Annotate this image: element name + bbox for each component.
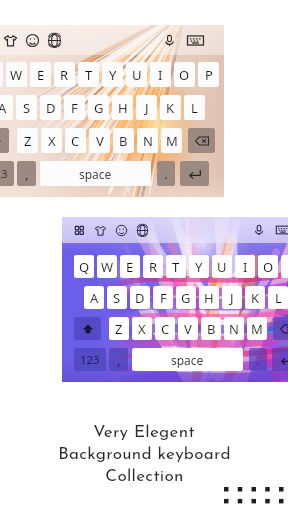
button[interactable]: Voice input xyxy=(252,223,266,237)
button[interactable]: Emoji xyxy=(25,33,40,48)
button[interactable]: Theme xyxy=(94,224,107,237)
button[interactable]: L xyxy=(268,286,288,309)
button[interactable]: Enter xyxy=(272,348,288,371)
staticText: C xyxy=(71,132,80,150)
button[interactable]: Keyboard xyxy=(275,222,288,238)
button[interactable]: A xyxy=(0,95,13,120)
button[interactable]: T xyxy=(78,62,99,87)
button[interactable]: Z xyxy=(17,128,38,153)
button[interactable]: Q xyxy=(0,62,3,87)
button[interactable]: B xyxy=(113,128,134,153)
button[interactable]: Shift xyxy=(0,128,9,153)
button[interactable]: L xyxy=(184,95,205,120)
button[interactable]: J xyxy=(222,286,242,309)
button[interactable]: K xyxy=(245,286,265,309)
button[interactable]: space xyxy=(40,161,151,186)
button[interactable]: Backspace xyxy=(273,317,288,340)
button[interactable]: U xyxy=(212,255,232,278)
staticText: G xyxy=(94,99,104,117)
button[interactable]: N xyxy=(137,128,158,153)
staticText: G xyxy=(181,289,191,307)
button[interactable]: Keyboard xyxy=(186,31,205,50)
button[interactable]: R xyxy=(143,255,163,278)
button[interactable]: Theme xyxy=(3,33,18,48)
button[interactable]: F xyxy=(64,95,85,120)
button[interactable]: C xyxy=(65,128,86,153)
staticText: M xyxy=(166,132,178,150)
staticText: J xyxy=(230,289,234,307)
staticText: , xyxy=(25,165,29,183)
button[interactable]: P xyxy=(281,255,288,278)
button[interactable]: E xyxy=(120,255,140,278)
button[interactable]: T xyxy=(166,255,186,278)
button[interactable]: H xyxy=(112,95,133,120)
staticText: B xyxy=(119,132,128,150)
button[interactable]: K xyxy=(160,95,181,120)
button[interactable]: O xyxy=(174,62,195,87)
button[interactable]: W xyxy=(6,62,27,87)
button[interactable]: D xyxy=(130,286,150,309)
button[interactable]: Q xyxy=(74,255,94,278)
button[interactable]: H xyxy=(199,286,219,309)
button[interactable]: Z xyxy=(109,317,129,340)
button[interactable]: Y xyxy=(102,62,123,87)
button[interactable]: N xyxy=(224,317,244,340)
staticText: X xyxy=(138,320,146,338)
staticText: 123 xyxy=(0,166,8,182)
button[interactable]: E xyxy=(30,62,51,87)
button[interactable]: I xyxy=(235,255,255,278)
staticText: B xyxy=(207,320,216,338)
button[interactable]: B xyxy=(201,317,221,340)
button[interactable]: Apps xyxy=(73,224,86,237)
staticText: C xyxy=(161,320,170,338)
staticText: A xyxy=(90,289,99,307)
button[interactable]: M xyxy=(161,128,182,153)
button[interactable]: F xyxy=(153,286,173,309)
button[interactable]: C xyxy=(155,317,175,340)
button[interactable]: Voice input xyxy=(162,33,177,48)
staticText: Y xyxy=(195,258,203,276)
button[interactable]: Backspace xyxy=(188,128,215,153)
button[interactable]: Enter xyxy=(180,161,209,186)
staticText: K xyxy=(251,289,260,307)
button[interactable]: 123 xyxy=(0,161,14,186)
staticText: T xyxy=(172,258,180,276)
button[interactable]: R xyxy=(54,62,75,87)
staticText: I xyxy=(158,66,163,84)
button[interactable]: . xyxy=(249,348,267,371)
button[interactable]: U xyxy=(126,62,147,87)
button[interactable]: I xyxy=(150,62,171,87)
staticText: U xyxy=(132,66,142,84)
staticText: , xyxy=(117,351,121,369)
button[interactable]: Language xyxy=(47,33,62,48)
staticText: E xyxy=(126,258,134,276)
button[interactable]: W xyxy=(97,255,117,278)
button[interactable]: P xyxy=(198,62,219,87)
button[interactable]: X xyxy=(41,128,62,153)
button[interactable]: V xyxy=(178,317,198,340)
button[interactable]: Y xyxy=(189,255,209,278)
button[interactable]: V xyxy=(89,128,110,153)
button[interactable]: J xyxy=(136,95,157,120)
button[interactable]: . xyxy=(157,161,175,186)
button[interactable]: M xyxy=(247,317,267,340)
button[interactable]: Language xyxy=(136,224,149,237)
staticText: W xyxy=(101,258,114,276)
button[interactable]: D xyxy=(40,95,61,120)
button[interactable]: G xyxy=(176,286,196,309)
button[interactable]: , xyxy=(17,161,36,186)
staticText: L xyxy=(191,99,198,117)
button[interactable]: A xyxy=(84,286,104,309)
button[interactable]: , xyxy=(109,348,128,371)
button[interactable]: O xyxy=(258,255,278,278)
button[interactable]: space xyxy=(132,348,243,371)
button[interactable]: Shift xyxy=(74,317,101,340)
button[interactable]: G xyxy=(88,95,109,120)
button[interactable]: 123 xyxy=(74,348,106,371)
button[interactable]: Emoji xyxy=(115,224,128,237)
staticText: D xyxy=(135,289,145,307)
staticText: F xyxy=(71,99,78,117)
button[interactable]: S xyxy=(16,95,37,120)
button[interactable]: S xyxy=(107,286,127,309)
button[interactable]: X xyxy=(132,317,152,340)
